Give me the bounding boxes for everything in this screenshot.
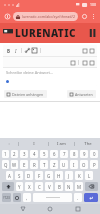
button[interactable]: H [55,171,63,180]
staticText: Antworten [75,92,93,97]
button[interactable]: M [75,182,83,191]
button[interactable]: Insert link [24,47,31,54]
staticText: 6 [53,151,56,157]
button[interactable]: I am [49,138,74,149]
staticText: 1 [4,151,7,157]
staticText: I [33,141,35,147]
button[interactable]: Backspace [85,182,98,191]
staticText: F [38,173,41,179]
button[interactable]: Antworten [67,90,96,98]
button[interactable]: Y [16,182,23,191]
button[interactable]: Emoji [13,193,21,202]
staticText: I [15,48,17,54]
button[interactable]: 5 [40,150,48,158]
button[interactable]: 6 [50,150,58,158]
button[interactable]: Symbols [2,193,11,202]
button[interactable]: Editor action [81,47,88,54]
button[interactable]: 1 [2,150,9,158]
staticText: B [58,184,61,190]
button[interactable]: I [19,138,48,149]
staticText: Z [53,162,56,168]
button[interactable]: More options [89,12,97,20]
button[interactable]: D [25,171,33,180]
button[interactable]: 7 [60,150,68,158]
button[interactable]: , [23,193,31,202]
button[interactable]: Editor action [81,59,88,66]
button[interactable]: S [15,171,23,180]
button[interactable]: K [75,171,83,180]
button[interactable]: 3 [20,150,28,158]
staticText: Q [4,162,8,168]
button[interactable]: X [25,182,33,191]
button[interactable]: W [11,160,18,169]
button[interactable]: V [45,182,53,191]
staticText: O [82,162,86,168]
staticText: The [84,141,92,147]
button[interactable]: . [74,193,82,202]
staticText: 5 [43,151,46,157]
button[interactable]: Schreibe deine Antwort... [3,68,97,86]
staticText: 7 [63,151,66,157]
button[interactable]: 4 [30,150,38,158]
button[interactable]: O [80,160,88,169]
button[interactable]: Home [45,204,55,214]
staticText: H [57,173,61,179]
button[interactable]: F [35,171,43,180]
button[interactable]: Home [3,12,12,21]
button[interactable]: lurenatic.com/abc/xyz/thread/2 [13,12,78,21]
button[interactable]: Dateien anhängen [4,90,47,98]
staticText: M [77,184,81,190]
staticText: U [62,162,66,168]
staticText: B [7,48,10,54]
button[interactable]: Editor action [88,59,95,66]
button[interactable]: P [90,160,98,169]
button[interactable]: Editor action [88,47,95,54]
button[interactable]: Q [2,160,9,169]
staticText: A [8,173,11,179]
button[interactable]: L [85,171,93,180]
staticText: N [67,184,71,190]
button[interactable]: N [65,182,73,191]
staticText: 3 [23,151,26,157]
button[interactable]: E [20,160,28,169]
button[interactable]: R [30,160,38,169]
staticText: Dateien anhängen [12,92,44,97]
button[interactable]: Editor action [69,59,76,66]
staticText: T [43,162,46,168]
button[interactable]: A [6,171,13,180]
button[interactable]: B [55,182,63,191]
button[interactable]: Shift [2,182,14,191]
button[interactable]: C [35,182,43,191]
button[interactable]: Italic [12,47,19,54]
staticText: : [8,141,10,147]
staticText: 4 [33,151,36,157]
staticText: 8 [73,151,76,157]
staticText: 0 [93,151,96,157]
button[interactable]: Bold [5,47,12,54]
button[interactable]: Insert image [31,47,38,54]
button[interactable]: I [70,160,78,169]
staticText: R [33,162,36,168]
button[interactable] [33,193,72,202]
staticText: LURENATIC [15,26,76,40]
button[interactable]: 2 [11,150,18,158]
button[interactable]: Enter [84,193,98,202]
button[interactable]: Refresh [80,12,89,21]
button[interactable]: T [40,160,48,169]
button[interactable]: Back [18,204,28,214]
button[interactable]: Recent apps [73,204,83,214]
button[interactable]: 8 [70,150,78,158]
staticText: X [28,184,31,190]
staticText: ?123 [3,196,10,200]
button[interactable]: 0 [90,150,98,158]
staticText: C [38,184,41,190]
button[interactable]: Z [50,160,58,169]
button[interactable]: J [65,171,73,180]
button[interactable]: The [75,138,100,149]
button[interactable]: G [45,171,53,180]
staticText: G [47,173,51,179]
staticText: Y [18,184,21,190]
button[interactable]: U [60,160,68,169]
button[interactable]: 9 [80,150,88,158]
